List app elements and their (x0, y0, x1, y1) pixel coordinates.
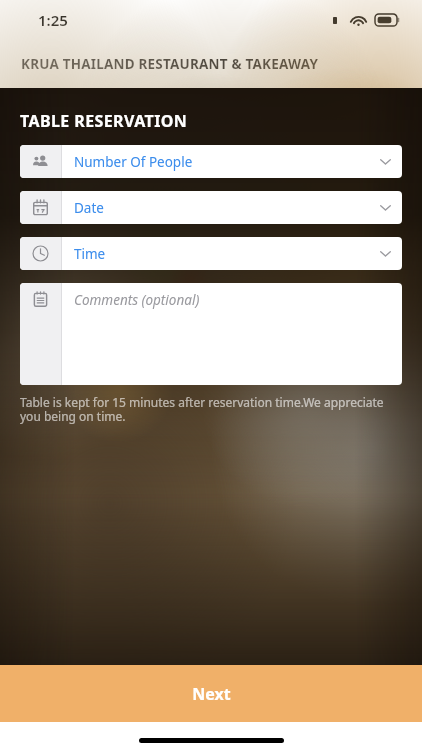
button[interactable]: Next (0, 665, 422, 722)
button[interactable]: Date (20, 191, 402, 224)
button[interactable]: Number Of People (20, 145, 402, 178)
staticText: Number Of People (74, 153, 368, 171)
staticText: Table is kept for 15 minutes after reser… (20, 394, 402, 425)
staticText: KRUA THAILAND RESTAURANT & TAKEAWAY (21, 55, 319, 73)
staticText: Next (192, 683, 231, 705)
button[interactable]: Comments (optional) (20, 283, 402, 385)
staticText: Comments (optional) (74, 291, 200, 309)
staticText: Time (74, 245, 368, 263)
staticText: Date (74, 199, 368, 217)
staticText: TABLE RESERVATION (20, 110, 188, 132)
button[interactable]: Time (20, 237, 402, 270)
staticText: 1:25 (38, 10, 68, 30)
